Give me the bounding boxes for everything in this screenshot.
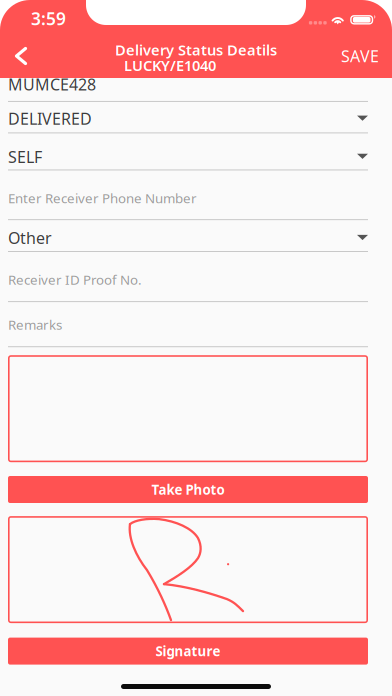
staticText: Remarks (8, 316, 62, 333)
staticText: Signature (155, 642, 220, 660)
staticText: Enter Receiver Phone Number (8, 189, 197, 207)
staticText: Delivery Status Deatils (115, 40, 277, 59)
staticText: MUMCE428 (8, 74, 96, 95)
staticText: Other (8, 227, 52, 248)
staticText: LUCKY/E1040 (124, 55, 216, 75)
button[interactable]: Take Photo (8, 476, 368, 503)
staticText: Receiver ID Proof No. (8, 271, 142, 288)
button[interactable]: Signature (8, 638, 368, 665)
button[interactable]: Back (0, 34, 42, 78)
button[interactable]: SAVE (328, 34, 392, 78)
staticText: 3:59 (31, 7, 66, 30)
staticText: DELIVERED (8, 108, 92, 129)
staticText: Take Photo (151, 481, 224, 498)
staticText: SELF (8, 146, 42, 167)
staticText: SAVE (341, 45, 379, 67)
